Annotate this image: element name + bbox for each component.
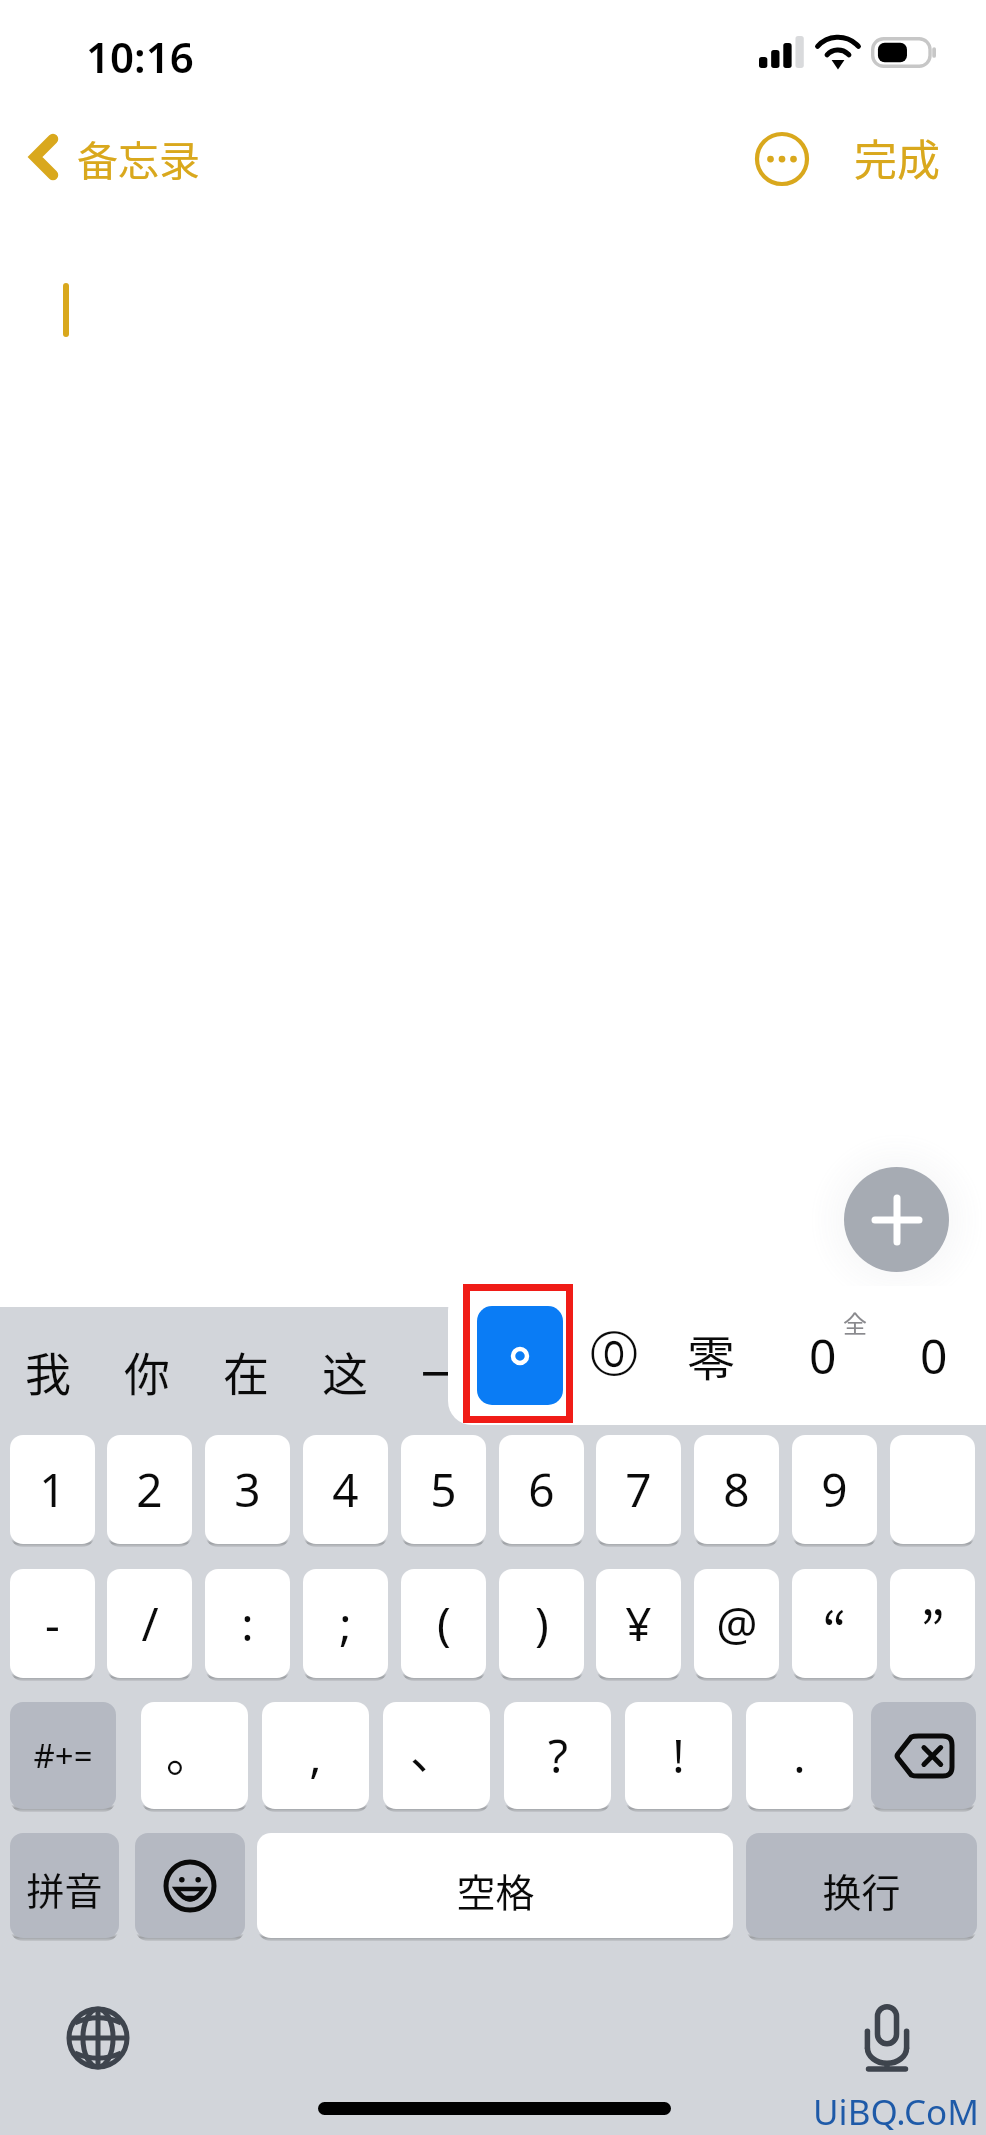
button[interactable]: 7 [596,1435,681,1544]
staticText: ¥ [625,1592,652,1655]
button[interactable]: More options [748,125,816,193]
button[interactable]: ) [499,1569,584,1678]
staticText: 零 [687,1320,736,1390]
staticText: UiBQ.CoM [813,2088,979,2130]
button[interactable]: 3 [205,1435,290,1544]
button[interactable]: . [746,1702,853,1809]
button[interactable]: ! [625,1702,732,1809]
staticText: “ [822,1590,847,1665]
button[interactable]: Emoji [135,1833,245,1938]
button[interactable]: @ [694,1569,779,1678]
button[interactable]: 我 [0,1312,95,1430]
button[interactable]: 5 [401,1435,486,1544]
staticText: 换行 [822,1862,901,1918]
button[interactable]: 备忘录 [22,120,212,194]
staticText: . [793,1724,806,1787]
button[interactable]: ¥ [596,1569,681,1678]
button[interactable]: ( [401,1569,486,1678]
staticText: 0 [809,1323,837,1388]
button[interactable]: Dictate [851,2002,923,2074]
button[interactable]: 拼音 [10,1833,119,1938]
button[interactable]: , [262,1702,369,1809]
button[interactable]: 4 [303,1435,388,1544]
staticText: 5 [430,1458,457,1521]
button[interactable]: 你 [99,1312,194,1430]
staticText: 3 [234,1458,261,1521]
button[interactable]: 换行 [746,1833,977,1938]
button[interactable]: 2 [107,1435,192,1544]
staticText: 6 [528,1458,555,1521]
button[interactable] [890,1435,975,1544]
button[interactable]: 1 [10,1435,95,1544]
button[interactable]: 一 [396,1312,491,1430]
button[interactable]: 。 [141,1702,248,1809]
staticText: 1 [39,1458,66,1521]
button[interactable]: / [107,1569,192,1678]
button[interactable]: 8 [694,1435,779,1544]
staticText: 在 [223,1338,269,1405]
button[interactable]: Switch keyboard [62,2002,134,2074]
button[interactable]: 这 [297,1312,392,1430]
staticText: 全 [843,1305,867,1340]
button[interactable]: Add [844,1167,949,1272]
staticText: 2 [136,1458,163,1521]
staticText: 备忘录 [77,128,200,187]
staticText: ) [535,1592,549,1655]
button[interactable]: - [10,1569,95,1678]
staticText: 4 [332,1458,359,1521]
button[interactable]: : [205,1569,290,1678]
staticText: ( [437,1592,451,1655]
staticText: 10:16 [86,28,194,80]
staticText: 7 [625,1458,652,1521]
staticText: 我 [25,1338,71,1405]
button[interactable]: 完成 [851,122,943,192]
staticText: 。 [166,1718,212,1785]
staticText: 空格 [456,1862,535,1918]
staticText: ” [920,1590,945,1665]
button[interactable]: 在 [198,1312,293,1430]
staticText: ? [548,1724,568,1787]
staticText: @ [716,1592,758,1655]
staticText: 9 [821,1458,848,1521]
staticText: ⓪ [590,1325,638,1385]
button[interactable] [477,1306,563,1405]
staticText: 这 [322,1338,368,1405]
staticText: 拼音 [26,1861,103,1916]
button[interactable]: ” [890,1569,975,1678]
staticText: : [241,1592,254,1655]
staticText: / [141,1592,159,1655]
button[interactable]: 6 [499,1435,584,1544]
staticText: 、 [410,1716,456,1783]
button[interactable]: “ [792,1569,877,1678]
staticText: 一 [421,1338,467,1405]
staticText: #+= [33,1733,93,1778]
button[interactable]: 空格 [257,1833,733,1938]
button[interactable]: ; [303,1569,388,1678]
staticText: , [309,1724,322,1787]
staticText: ; [339,1592,352,1655]
button[interactable]: ? [504,1702,611,1809]
staticText: - [45,1592,60,1655]
staticText: ! [672,1724,685,1787]
staticText: 0 [920,1323,948,1388]
button[interactable]: #+= [10,1702,116,1809]
button[interactable]: Delete [871,1702,976,1809]
button[interactable]: 9 [792,1435,877,1544]
button[interactable]: 、 [383,1702,490,1809]
staticText: 8 [723,1458,750,1521]
staticText: 完成 [854,126,940,188]
staticText: 你 [124,1338,170,1405]
